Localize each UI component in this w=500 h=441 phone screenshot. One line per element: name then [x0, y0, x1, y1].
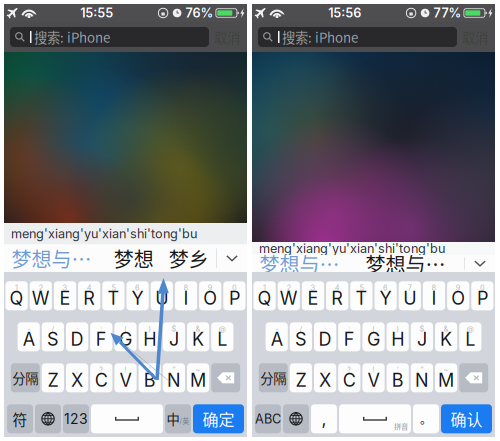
staticText: I	[183, 287, 188, 309]
button[interactable]: 梦想与现实同步	[4, 244, 106, 272]
button[interactable]: 9	[199, 281, 221, 310]
staticText: 4	[335, 283, 340, 292]
button[interactable]: 9	[447, 281, 469, 310]
button[interactable]: 1	[253, 281, 276, 310]
button[interactable]: ?	[338, 363, 360, 392]
staticText: 搜索: iPhone	[34, 27, 110, 47]
button[interactable]: '	[387, 363, 409, 392]
button[interactable]: 0	[223, 281, 245, 310]
button[interactable]: Space	[91, 404, 163, 433]
button[interactable]: ;	[338, 322, 360, 351]
button[interactable]: Confirm	[441, 404, 492, 433]
button[interactable]: ABC	[255, 404, 281, 433]
button[interactable]: More candidates	[217, 244, 247, 272]
button[interactable]: ;	[90, 322, 112, 351]
button[interactable]: 2	[30, 281, 52, 310]
staticText: 0	[232, 283, 237, 292]
staticText: A	[23, 328, 35, 350]
button[interactable]: .	[42, 363, 64, 392]
button[interactable]: ,	[66, 363, 88, 392]
button[interactable]: 梦想与现实	[358, 255, 464, 272]
button[interactable]: '	[139, 363, 161, 392]
staticText: :	[76, 324, 78, 333]
button[interactable]: @	[459, 322, 481, 351]
staticText: C	[343, 369, 356, 391]
button[interactable]: 6	[126, 281, 149, 310]
staticText: 分隔	[260, 368, 286, 387]
staticText: 取消	[462, 27, 488, 47]
button[interactable]: "	[163, 363, 185, 392]
staticText: Y	[132, 287, 144, 309]
button[interactable]: :	[314, 322, 336, 351]
button[interactable]: )	[139, 322, 161, 351]
button[interactable]: (	[362, 322, 385, 351]
button[interactable]: 5	[350, 281, 372, 310]
button[interactable]: /	[42, 322, 64, 351]
button[interactable]: Symbols	[7, 404, 33, 433]
button[interactable]: 6	[374, 281, 397, 310]
button[interactable]: Space	[339, 404, 411, 433]
staticText: R	[331, 287, 343, 309]
button[interactable]: Delete	[211, 363, 240, 392]
button[interactable]: Switch keyboard	[35, 404, 61, 433]
staticText: X	[71, 369, 83, 391]
staticText: Y	[380, 287, 392, 309]
staticText: ,	[324, 365, 326, 374]
button[interactable]: $	[163, 322, 185, 351]
button[interactable]: !	[362, 363, 385, 392]
button[interactable]: ~	[435, 363, 457, 392]
button[interactable]: /	[290, 322, 312, 351]
button[interactable]: &	[435, 322, 457, 351]
staticText: '	[149, 365, 151, 374]
button[interactable]: &	[187, 322, 209, 351]
button[interactable]: @	[211, 322, 233, 351]
button[interactable]: 2	[278, 281, 300, 310]
staticText: 1	[263, 283, 266, 292]
button[interactable]: 梦想	[106, 244, 161, 272]
button[interactable]: 4	[326, 281, 348, 310]
button[interactable]: .	[290, 363, 312, 392]
button[interactable]: :	[66, 322, 88, 351]
button[interactable]: More candidates	[465, 255, 495, 272]
button[interactable]: Separator	[259, 363, 288, 392]
button[interactable]: Confirm	[193, 404, 244, 433]
button[interactable]: ?	[90, 363, 112, 392]
button[interactable]: (	[114, 322, 137, 351]
button[interactable]: Chinese English	[165, 404, 191, 433]
button[interactable]: 3	[302, 281, 324, 310]
button[interactable]: $	[411, 322, 433, 351]
button[interactable]: "	[411, 363, 433, 392]
button[interactable]: -	[266, 322, 288, 351]
staticText: 8	[431, 283, 436, 292]
button[interactable]: 7	[399, 281, 421, 310]
staticText: W	[32, 287, 50, 309]
button[interactable]: ,	[314, 363, 336, 392]
button[interactable]: 4	[78, 281, 100, 310]
button[interactable]: !	[114, 363, 137, 392]
button[interactable]: Numbers	[63, 404, 89, 433]
staticText: 8	[183, 283, 188, 292]
button[interactable]: 8	[175, 281, 197, 310]
button[interactable]: 0	[471, 281, 493, 310]
button[interactable]: )	[387, 322, 409, 351]
button[interactable]: 8	[423, 281, 445, 310]
staticText: T	[107, 287, 119, 309]
button[interactable]: Period	[413, 404, 439, 433]
button[interactable]: ~	[187, 363, 209, 392]
staticText: 3	[310, 283, 315, 292]
staticText: O	[451, 287, 465, 309]
button[interactable]: 梦想与现实同步	[252, 255, 358, 272]
button[interactable]: 5	[102, 281, 124, 310]
button[interactable]: 取消	[457, 27, 493, 47]
button[interactable]: 取消	[209, 27, 245, 47]
button[interactable]: 3	[54, 281, 76, 310]
button[interactable]: 7	[151, 281, 173, 310]
button[interactable]: Delete	[459, 363, 488, 392]
button[interactable]: -	[18, 322, 40, 351]
button[interactable]: Switch keyboard	[283, 404, 309, 433]
button[interactable]: Separator	[11, 363, 40, 392]
button[interactable]: Comma	[311, 404, 337, 433]
button[interactable]: 梦乡	[161, 244, 216, 272]
button[interactable]: 1	[5, 281, 28, 310]
staticText: 中	[166, 409, 179, 428]
